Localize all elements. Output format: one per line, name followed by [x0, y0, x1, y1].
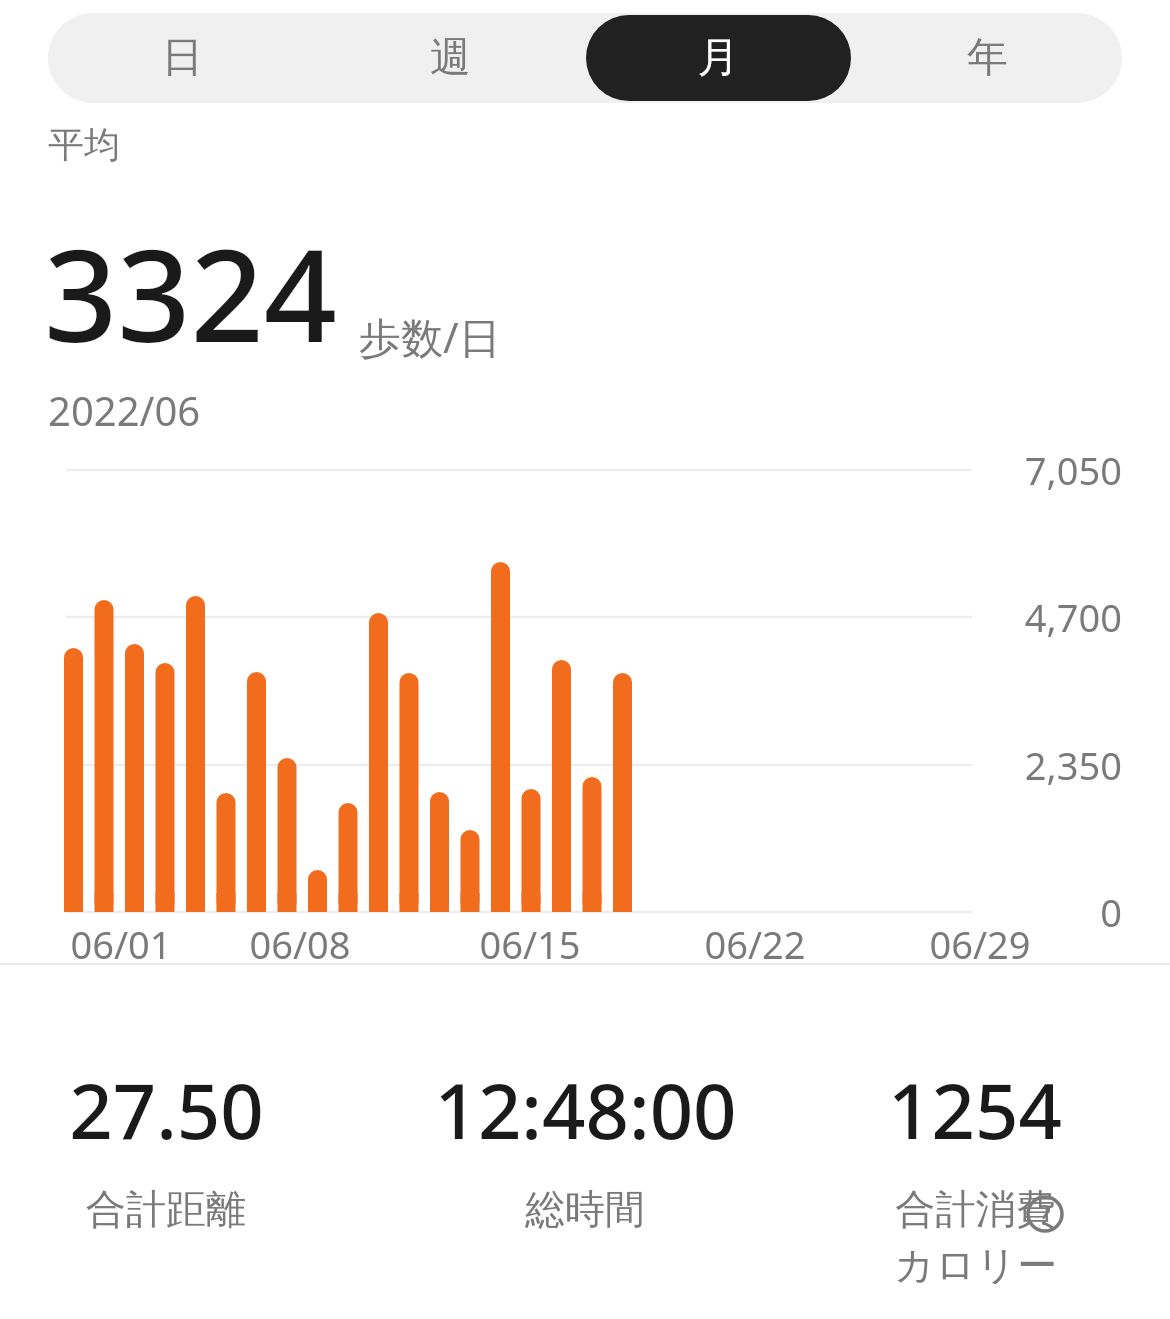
button[interactable]: 月: [586, 15, 851, 101]
staticText: 12:48:00: [434, 1058, 737, 1162]
button[interactable]: ヘルプ: [1022, 1191, 1068, 1237]
button[interactable]: 1254: [800, 1058, 1150, 1291]
staticText: 2022/06: [48, 383, 201, 437]
staticText: 06/22: [665, 918, 845, 970]
staticText: 月: [698, 32, 739, 84]
staticText: 週: [430, 32, 471, 84]
staticText: 日: [162, 32, 203, 84]
staticText: 06/01: [31, 918, 211, 970]
staticText: 06/29: [890, 918, 1070, 970]
staticText: 1254: [888, 1058, 1062, 1162]
staticText: 4,700: [990, 591, 1122, 643]
button[interactable]: 週: [318, 15, 582, 101]
staticText: 合計消費 カロリー: [894, 1184, 1057, 1291]
button[interactable]: 日: [50, 15, 314, 101]
staticText: 0: [990, 886, 1122, 938]
staticText: 06/15: [440, 918, 620, 970]
staticText: 06/08: [210, 918, 390, 970]
staticText: 年: [967, 32, 1008, 84]
staticText: 7,050: [990, 444, 1122, 496]
staticText: 合計距離: [86, 1184, 246, 1234]
staticText: 2,350: [990, 739, 1122, 791]
button[interactable]: 年: [855, 15, 1120, 101]
staticText: 平均: [48, 122, 120, 167]
button[interactable]: 12:48:00: [410, 1058, 760, 1234]
staticText: 歩数/日: [359, 308, 501, 365]
staticText: ?: [1039, 1196, 1051, 1233]
button[interactable]: 27.50: [0, 1058, 341, 1234]
staticText: 27.50: [69, 1058, 264, 1162]
staticText: 総時間: [525, 1184, 645, 1234]
staticText: 3324: [44, 205, 337, 379]
